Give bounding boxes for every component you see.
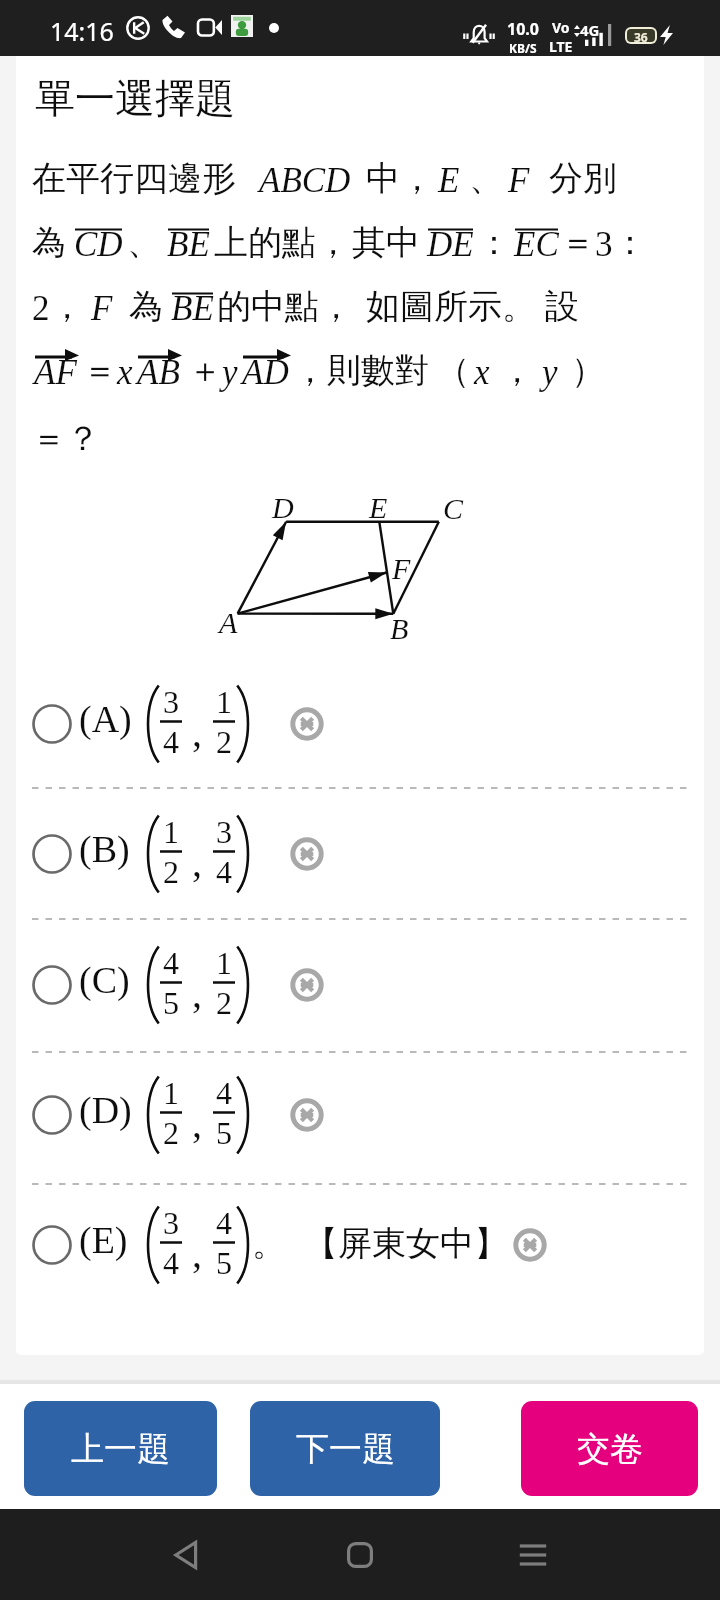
staticText: 3: [160, 1205, 182, 1240]
button[interactable]: [16, 1184, 704, 1306]
button[interactable]: Recent apps: [493, 1509, 573, 1600]
staticText: 分別: [549, 157, 617, 200]
staticText: 。: [252, 1222, 286, 1265]
staticText: 則數對: [327, 349, 429, 392]
button[interactable]: [16, 660, 704, 787]
staticText: KB/S: [509, 40, 537, 56]
staticText: C: [443, 492, 464, 525]
staticText: ，: [293, 349, 327, 392]
staticText: 4: [160, 1245, 182, 1280]
staticText: BE: [171, 289, 214, 328]
staticText: ＝: [83, 349, 117, 392]
staticText: AB: [137, 353, 180, 392]
staticText: 上的點，: [214, 221, 350, 264]
staticText: F: [392, 552, 411, 585]
staticText: ABCD: [259, 161, 351, 200]
staticText: E: [438, 161, 460, 200]
staticText: 4: [213, 854, 235, 889]
button[interactable]: Back: [146, 1509, 226, 1600]
staticText: 3: [213, 814, 235, 849]
staticText: DE: [427, 225, 474, 264]
staticText: 2: [160, 1115, 182, 1150]
staticText: 下一題: [296, 1428, 395, 1470]
staticText: 5: [213, 1115, 235, 1150]
button[interactable]: Clear answer (C): [290, 968, 324, 1002]
button[interactable]: Home: [320, 1509, 400, 1600]
staticText: ：: [613, 221, 647, 264]
staticText: 5: [160, 985, 182, 1020]
staticText: 36: [634, 29, 648, 42]
staticText: EC: [514, 225, 559, 264]
staticText: x: [474, 353, 490, 392]
staticText: ,: [192, 710, 202, 754]
button[interactable]: [16, 919, 704, 1051]
staticText: y: [222, 353, 238, 392]
staticText: 中，: [366, 157, 434, 200]
staticText: 【屏東女中】: [304, 1222, 508, 1265]
staticText: 1: [160, 814, 182, 849]
staticText: ＋: [188, 349, 222, 392]
button[interactable]: [16, 788, 704, 918]
staticText: 為: [129, 285, 163, 328]
staticText: ,: [192, 1101, 202, 1145]
staticText: 為: [32, 221, 66, 264]
button[interactable]: Clear answer (A): [290, 707, 324, 741]
staticText: ＝？: [32, 417, 100, 460]
staticText: ，: [50, 285, 84, 328]
staticText: 4: [160, 945, 182, 980]
staticText: ）: [571, 349, 605, 392]
button[interactable]: Clear answer (E): [513, 1228, 547, 1262]
staticText: 1: [213, 684, 235, 719]
staticText: ，: [500, 349, 534, 392]
staticText: 2: [213, 724, 235, 759]
staticText: Vo: [552, 18, 570, 37]
staticText: 如圖所示。: [366, 285, 536, 328]
staticText: (A): [79, 698, 132, 740]
staticText: D: [272, 491, 294, 524]
staticText: A: [219, 606, 238, 639]
staticText: 單一選擇題: [35, 73, 235, 123]
staticText: ：: [477, 221, 511, 264]
staticText: E: [369, 491, 388, 524]
staticText: LTE: [549, 37, 573, 56]
staticText: ,: [192, 971, 202, 1015]
staticText: B: [390, 612, 409, 645]
staticText: AF: [34, 353, 77, 392]
staticText: 、: [469, 157, 503, 200]
staticText: BE: [167, 225, 210, 264]
staticText: 4G: [580, 20, 600, 40]
button[interactable]: Clear answer (D): [290, 1098, 324, 1132]
button[interactable]: 交卷: [521, 1401, 698, 1496]
staticText: ,: [192, 1231, 202, 1275]
staticText: 、: [127, 221, 161, 264]
staticText: 上一題: [71, 1428, 170, 1470]
staticText: 4: [213, 1205, 235, 1240]
staticText: 2: [213, 985, 235, 1020]
button[interactable]: 下一題: [250, 1401, 440, 1496]
staticText: (E): [79, 1219, 128, 1261]
staticText: 2: [32, 289, 50, 328]
staticText: (D): [79, 1089, 132, 1131]
staticText: 交卷: [577, 1428, 643, 1470]
button[interactable]: 上一題: [24, 1401, 217, 1496]
staticText: 1: [213, 945, 235, 980]
staticText: 5: [213, 1245, 235, 1280]
staticText: 的中點，: [217, 285, 353, 328]
staticText: (C): [79, 959, 130, 1001]
staticText: 4: [213, 1075, 235, 1110]
staticText: 4: [160, 724, 182, 759]
staticText: 設: [545, 285, 579, 328]
staticText: 在平行四邊形: [32, 157, 236, 200]
staticText: ＝: [561, 221, 595, 264]
staticText: 3: [160, 684, 182, 719]
staticText: 10.0: [507, 18, 539, 40]
button[interactable]: [16, 1052, 704, 1183]
button[interactable]: Clear answer (B): [290, 837, 324, 871]
staticText: (B): [79, 828, 130, 870]
staticText: AD: [242, 353, 289, 392]
staticText: 3: [595, 225, 613, 264]
staticText: y: [542, 353, 558, 392]
staticText: F: [91, 289, 113, 328]
staticText: x: [117, 353, 133, 392]
staticText: 1: [160, 1075, 182, 1110]
